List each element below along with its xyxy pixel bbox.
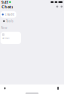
staticText: Attachment — [2, 37, 9, 39]
staticText: Tools — [6, 19, 13, 23]
staticText: Now — [1, 26, 7, 30]
button[interactable]: Claude — [1, 11, 16, 18]
staticText: Claude — [5, 13, 15, 16]
staticText: 9:41 — [1, 0, 8, 5]
staticText: Chats — [1, 4, 13, 9]
button[interactable]: Chats — [1, 4, 13, 9]
button[interactable]: Add attachment — [4, 87, 5, 89]
button[interactable]: New chat — [58, 6, 63, 8]
button[interactable]: Dictate — [57, 87, 59, 90]
button[interactable]: Search — [56, 6, 58, 8]
